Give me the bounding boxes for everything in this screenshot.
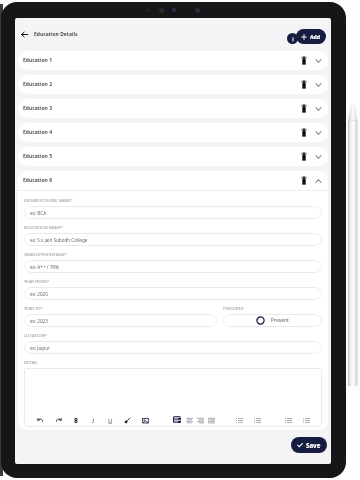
- staticText: ex: S.s jain Subodh College: [30, 237, 88, 243]
- button[interactable]: Align left: [173, 416, 181, 423]
- button[interactable]: Insert image: [140, 415, 150, 425]
- button[interactable]: Italic: [88, 415, 98, 425]
- button[interactable]: Delete Education 1: [297, 54, 310, 67]
- staticText: Save: [306, 441, 321, 449]
- button[interactable]: Delete Education 5: [297, 150, 310, 163]
- staticText: YEAR FROM*: [24, 279, 50, 285]
- button[interactable]: Redo: [53, 415, 63, 425]
- button[interactable]: Collapse: [312, 174, 325, 187]
- staticText: Education 5: [23, 153, 52, 160]
- button[interactable]: Expand: [312, 78, 325, 91]
- button[interactable]: Education 1: [18, 51, 328, 70]
- button[interactable]: Bulleted list: [234, 415, 244, 425]
- staticText: PERSUING: [223, 306, 244, 312]
- button[interactable]: Information: [287, 33, 298, 44]
- button[interactable]: Increase indent: [301, 415, 311, 425]
- staticText: EDUCATION NAME*: [24, 225, 64, 231]
- staticText: DETAIL: [24, 360, 38, 366]
- button[interactable]: Decrease indent: [283, 415, 293, 425]
- button[interactable]: Education 5: [18, 147, 328, 166]
- button[interactable]: Insert link: [122, 415, 132, 425]
- staticText: Education 6: [23, 177, 52, 184]
- button[interactable]: Education 6: [18, 171, 328, 190]
- staticText: LOCATION*: [24, 333, 47, 339]
- button[interactable]: Expand: [312, 126, 325, 139]
- staticText: Education Details: [34, 31, 78, 38]
- staticText: Education 1: [23, 57, 52, 64]
- staticText: U: [108, 417, 113, 425]
- button[interactable]: ex: BCA: [24, 206, 322, 219]
- button[interactable]: ex: 2023: [24, 314, 217, 327]
- button[interactable]: ex: A++ / 78%: [24, 260, 322, 273]
- staticText: B: [74, 417, 79, 425]
- button[interactable]: Delete Education 2: [297, 78, 310, 91]
- button[interactable]: Align right: [195, 415, 205, 425]
- button[interactable]: ex: Jaipur: [24, 341, 322, 354]
- button[interactable]: Add: [296, 29, 326, 44]
- staticText: Present: [271, 317, 289, 324]
- button[interactable]: Delete Education 3: [297, 102, 310, 115]
- button[interactable]: Undo: [35, 415, 45, 425]
- button[interactable]: Align center: [184, 415, 194, 425]
- button[interactable]: Delete Education 6: [297, 174, 310, 187]
- staticText: ex: 2020: [30, 291, 48, 297]
- button[interactable]: Education 4: [18, 123, 328, 142]
- staticText: Add: [310, 33, 321, 40]
- button[interactable]: Bold: [71, 415, 81, 425]
- button[interactable]: Numbered list: [252, 415, 262, 425]
- button[interactable]: Save: [291, 437, 327, 453]
- button[interactable]: Present: [223, 314, 322, 327]
- staticText: GRADE/PERCENTAGE*: [24, 252, 68, 258]
- staticText: Education 3: [23, 105, 52, 112]
- button[interactable]: Education 3: [18, 99, 328, 118]
- button[interactable]: Underline: [105, 415, 115, 425]
- staticText: I: [92, 417, 95, 425]
- staticText: ex: BCA: [30, 210, 47, 216]
- button[interactable]: Delete Education 4: [297, 126, 310, 139]
- staticText: ex: A++ / 78%: [30, 264, 59, 270]
- button[interactable]: ex: S.s jain Subodh College: [24, 233, 322, 246]
- button[interactable]: Back: [19, 29, 30, 40]
- staticText: ex: 2023: [30, 318, 48, 324]
- button[interactable]: Expand: [312, 54, 325, 67]
- button[interactable]: Align justify: [206, 415, 216, 425]
- staticText: Education 4: [23, 129, 52, 136]
- staticText: ex: Jaipur: [30, 345, 50, 351]
- button[interactable]: Expand: [312, 102, 325, 115]
- staticText: Education 2: [23, 81, 52, 88]
- staticText: DEGREE/COURSE NAME*: [24, 198, 73, 204]
- staticText: YEAR TO*: [24, 306, 43, 312]
- button[interactable]: Education 2: [18, 75, 328, 94]
- button[interactable]: Expand: [312, 150, 325, 163]
- button[interactable]: ex: 2020: [24, 287, 322, 300]
